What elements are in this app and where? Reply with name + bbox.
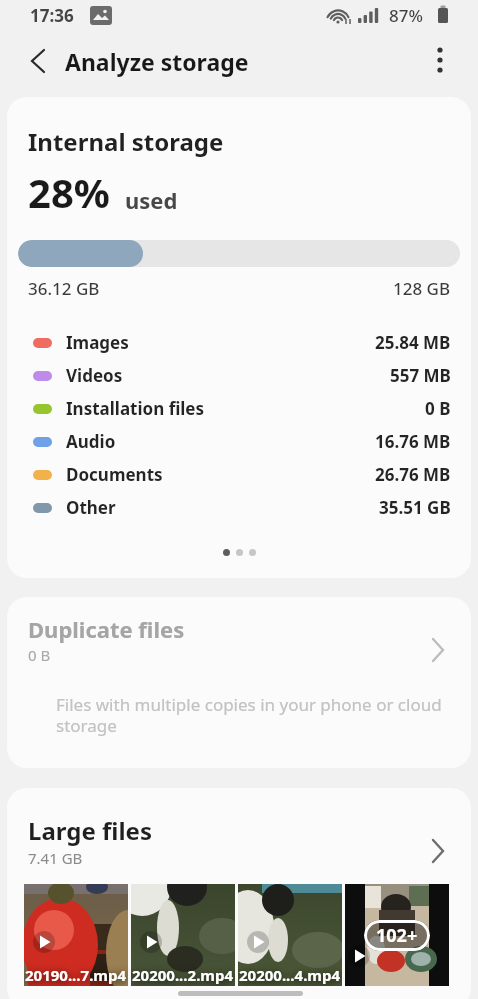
- staticText: Videos: [66, 364, 123, 387]
- staticText: 25.84 MB: [375, 331, 451, 354]
- button[interactable]: Duplicate files: [7, 597, 471, 768]
- staticText: Images: [66, 331, 129, 354]
- staticText: 20190...7.mp4: [25, 965, 127, 985]
- staticText: 36.12 GB: [28, 277, 100, 300]
- button[interactable]: Large files: [7, 788, 471, 878]
- staticText: 128 GB: [393, 277, 451, 300]
- staticText: 35.51 GB: [379, 496, 451, 519]
- staticText: 102+: [376, 923, 418, 948]
- button[interactable]: 20190...7.mp4: [24, 884, 128, 986]
- staticText: Large files: [28, 814, 152, 847]
- staticText: Audio: [66, 430, 116, 453]
- button[interactable]: Other: [28, 491, 451, 524]
- staticText: 0 B: [425, 397, 451, 420]
- button[interactable]: [420, 40, 460, 80]
- staticText: Internal storage: [28, 125, 224, 158]
- staticText: Documents: [66, 463, 163, 486]
- staticText: 28%: [28, 165, 110, 219]
- button[interactable]: Images: [28, 326, 451, 359]
- button[interactable]: Documents: [28, 458, 451, 491]
- staticText: 0 B: [28, 645, 51, 665]
- button[interactable]: 20200...2.mp4: [131, 884, 235, 986]
- staticText: 20200...2.mp4: [132, 965, 234, 985]
- button[interactable]: Videos: [28, 359, 451, 392]
- staticText: Files with multiple copies in your phone…: [56, 693, 448, 737]
- staticText: 17:36: [30, 4, 74, 27]
- staticText: 7.41 GB: [28, 848, 83, 868]
- button[interactable]: [18, 39, 58, 83]
- staticText: Other: [66, 496, 116, 519]
- staticText: Installation files: [66, 397, 205, 420]
- staticText: Analyze storage: [65, 46, 249, 77]
- staticText: 20200...4.mp4: [239, 965, 341, 985]
- staticText: 16.76 MB: [375, 430, 451, 453]
- button[interactable]: Installation files: [28, 392, 451, 425]
- staticText: Duplicate files: [28, 614, 185, 644]
- staticText: 87%: [389, 4, 423, 27]
- button[interactable]: Audio: [28, 425, 451, 458]
- button[interactable]: 20200...4.mp4: [238, 884, 342, 986]
- staticText: 557 MB: [390, 364, 451, 387]
- staticText: 26.76 MB: [375, 463, 451, 486]
- staticText: used: [125, 185, 178, 215]
- button[interactable]: 102+: [345, 884, 449, 986]
